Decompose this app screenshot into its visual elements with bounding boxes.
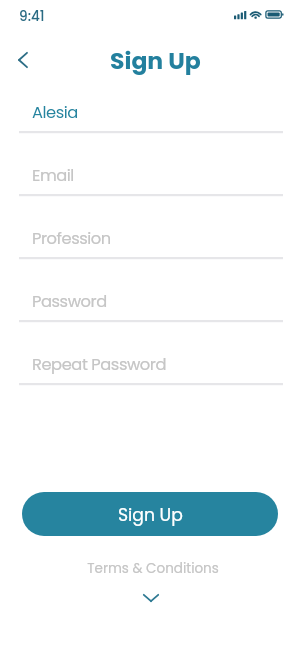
button[interactable]: Sign Up [22,492,278,536]
staticText: Profession [32,227,111,250]
staticText: Repeat Password [32,353,167,376]
button[interactable]: Terms & Conditions [3,556,300,580]
button[interactable]: Scroll down [137,587,165,609]
staticText: Email [32,164,74,187]
staticText: Sign Up [118,503,183,527]
button[interactable]: Email [0,153,300,197]
staticText: Terms & Conditions [87,559,219,578]
staticText: Sign Up [110,44,201,76]
staticText: Alesia [32,101,78,124]
button[interactable]: Password [0,279,300,323]
button[interactable]: Alesia [0,90,300,134]
button[interactable]: Repeat Password [0,342,300,386]
button[interactable]: Profession [0,216,300,260]
button[interactable]: Back [9,46,37,74]
staticText: Password [32,290,107,313]
staticText: 9:41 [19,7,45,26]
